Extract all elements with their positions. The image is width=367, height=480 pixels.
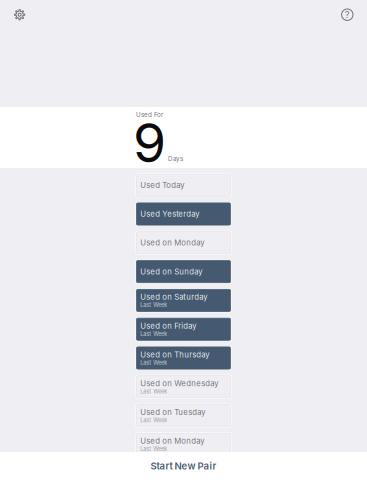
staticText: Last Week <box>140 330 167 337</box>
button[interactable]: Settings <box>14 9 25 20</box>
staticText: Used Yesterday <box>140 209 199 219</box>
staticText: Used Today <box>140 180 184 190</box>
button[interactable]: Used Today <box>135 173 231 197</box>
staticText: Last Week <box>140 359 167 366</box>
staticText: ? <box>345 9 350 20</box>
button[interactable]: Used on Saturday <box>135 288 231 312</box>
staticText: Start New Pair <box>150 460 216 472</box>
staticText: Used on Thursday <box>140 350 209 359</box>
staticText: Used on Tuesday <box>140 407 205 417</box>
staticText: Days <box>168 155 183 163</box>
button[interactable]: Help <box>342 9 353 20</box>
staticText: Last Week <box>140 302 167 308</box>
staticText: Used on Friday <box>140 321 196 330</box>
staticText: Last Week <box>140 446 167 452</box>
button[interactable]: Used on Thursday <box>135 346 231 370</box>
button[interactable]: Start New Pair <box>0 452 367 480</box>
button[interactable]: Used on Monday <box>135 432 231 456</box>
button[interactable]: Used on Wednesday <box>135 375 231 399</box>
button[interactable]: Used on Monday <box>135 231 231 255</box>
staticText: Last Week <box>140 417 167 424</box>
staticText: Used on Sunday <box>140 267 202 276</box>
button[interactable]: Used on Friday <box>135 317 231 341</box>
staticText: Used For <box>136 111 163 119</box>
staticText: Last Week <box>140 388 167 395</box>
button[interactable]: Used Yesterday <box>135 202 231 226</box>
button[interactable]: Used on Sunday <box>135 260 231 284</box>
staticText: 9 <box>133 110 166 175</box>
staticText: Used on Monday <box>140 238 204 247</box>
staticText: Used on Monday <box>140 436 204 446</box>
button[interactable]: Used on Tuesday <box>135 404 231 428</box>
staticText: Used on Saturday <box>140 292 207 302</box>
staticText: Used on Wednesday <box>140 379 218 388</box>
